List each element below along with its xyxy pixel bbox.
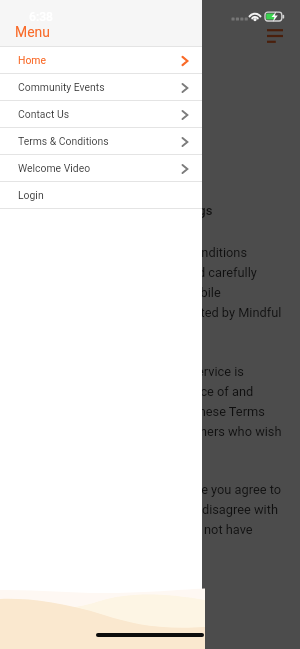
button[interactable]: Login [0,182,202,208]
staticText: Welcome Video [18,162,91,174]
staticText: Please read these Terms and Conditions b… [18,245,282,320]
staticText: By accessing or using the Service you ag… [18,482,282,537]
staticText: 6:38 [29,10,54,24]
button[interactable]: Welcome Video [0,155,202,181]
button[interactable]: Home [0,47,202,73]
staticText: Contact Us [18,108,69,120]
staticText: Login [18,189,44,201]
button[interactable]: Community Events [0,74,202,100]
staticText: Terms and Conditions of Settings [18,203,213,218]
button[interactable]: Terms & Conditions [0,128,202,154]
staticText: Community Events [18,81,105,93]
button[interactable]: Open navigation menu [264,26,286,46]
staticText: Terms & Conditions [18,135,109,147]
staticText: Your access to and use of the Service is… [18,364,282,439]
button[interactable]: Contact Us [0,101,202,127]
staticText: Menu [15,24,50,40]
staticText: Home [18,54,46,66]
